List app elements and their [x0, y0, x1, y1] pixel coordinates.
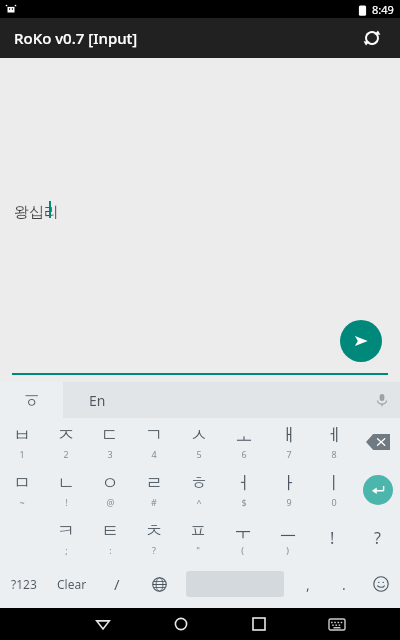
staticText: @: [106, 496, 115, 508]
staticText: 2: [63, 448, 69, 460]
staticText: (: [241, 544, 244, 556]
staticText: ㅏ: [280, 472, 298, 495]
button[interactable]: Recents: [220, 608, 298, 640]
staticText: 0: [331, 496, 337, 508]
button[interactable]: ㅅ: [176, 418, 221, 466]
button[interactable]: ㅂ: [0, 418, 44, 466]
button[interactable]: ,: [290, 562, 326, 606]
staticText: 3: [107, 448, 113, 460]
button[interactable]: ㅋ: [44, 514, 88, 562]
staticText: RoKo v0.7 [Input]: [14, 28, 138, 48]
button[interactable]: ㅜ: [220, 514, 265, 562]
staticText: ": [196, 544, 200, 556]
staticText: ㅓ: [235, 472, 253, 495]
button[interactable]: ㄷ: [88, 418, 132, 466]
button[interactable]: ㅗ: [221, 418, 266, 466]
staticText: ㅜ: [234, 520, 252, 543]
button[interactable]: Keyboard: [298, 608, 376, 640]
staticText: #: [151, 496, 157, 508]
button[interactable]: ㅌ: [88, 514, 132, 562]
staticText: 6: [241, 448, 247, 460]
staticText: ?123: [11, 576, 37, 592]
button[interactable]: ㅈ: [44, 418, 88, 466]
button[interactable]: ㅓ: [221, 466, 266, 514]
button[interactable]: Emoji: [362, 562, 400, 606]
staticText: ㅁ: [13, 472, 31, 495]
button[interactable]: Back: [64, 608, 142, 640]
staticText: 5: [196, 448, 202, 460]
button[interactable]: Language: [0, 382, 63, 418]
staticText: :: [109, 544, 112, 556]
staticText: ~: [19, 496, 25, 508]
staticText: Clear: [57, 576, 87, 592]
staticText: ㅈ: [57, 424, 75, 447]
button[interactable]: /: [96, 562, 138, 606]
button[interactable]: Home: [142, 608, 220, 640]
staticText: ㅔ: [325, 424, 343, 447]
button[interactable]: Backspace: [356, 418, 400, 466]
staticText: 9: [286, 496, 292, 508]
button[interactable]: Refresh: [352, 18, 392, 58]
staticText: !: [330, 527, 335, 549]
button[interactable]: ㅍ: [176, 514, 220, 562]
button[interactable]: Change keyboard: [138, 562, 180, 606]
staticText: /: [114, 574, 120, 594]
button[interactable]: En: [63, 382, 400, 418]
staticText: 4: [151, 448, 157, 460]
button[interactable]: ㅇ: [88, 466, 132, 514]
staticText: ㄷ: [101, 424, 119, 447]
staticText: ㅣ: [325, 472, 343, 495]
button[interactable]: ㅏ: [266, 466, 311, 514]
button[interactable]: ㅁ: [0, 466, 44, 514]
staticText: 1: [19, 448, 25, 460]
staticText: ㅡ: [279, 520, 297, 543]
staticText: ;: [65, 544, 68, 556]
button[interactable]: ㅡ: [265, 514, 310, 562]
staticText: ㄹ: [145, 472, 163, 495]
button[interactable]: .: [326, 562, 362, 606]
staticText: !: [65, 496, 68, 508]
staticText: ㅂ: [13, 424, 31, 447]
button[interactable]: !: [310, 514, 355, 562]
button[interactable]: Send: [340, 320, 382, 362]
staticText: 7: [286, 448, 292, 460]
button[interactable]: ㅐ: [266, 418, 311, 466]
staticText: 왕십리: [14, 203, 59, 222]
button[interactable]: ㅔ: [311, 418, 356, 466]
button[interactable]: Enter: [356, 466, 400, 514]
button[interactable]: ㅣ: [311, 466, 356, 514]
staticText: .: [342, 575, 346, 594]
button[interactable]: ㄱ: [132, 418, 176, 466]
staticText: ^: [196, 496, 202, 508]
button[interactable]: ?123: [0, 562, 48, 606]
button[interactable]: ㄹ: [132, 466, 176, 514]
button[interactable]: ?: [355, 514, 400, 562]
staticText: ㅋ: [57, 520, 75, 543]
staticText: ,: [306, 575, 310, 594]
button[interactable]: ㅎ: [176, 466, 221, 514]
staticText: ㄱ: [145, 424, 163, 447]
staticText: ㅐ: [280, 424, 298, 447]
button[interactable]: Voice input: [364, 382, 400, 418]
staticText: $: [241, 496, 247, 508]
staticText: ㅍ: [189, 520, 207, 543]
staticText: ㅎ: [190, 472, 208, 495]
staticText: ?: [374, 527, 381, 549]
staticText: En: [89, 391, 106, 410]
button[interactable]: ㅊ: [132, 514, 176, 562]
button[interactable]: Clear: [48, 562, 96, 606]
staticText: ㅅ: [190, 424, 208, 447]
staticText: ㄴ: [57, 472, 75, 495]
staticText: ㅊ: [145, 520, 163, 543]
staticText: ㅌ: [101, 520, 119, 543]
staticText: ㆆ: [23, 390, 40, 411]
staticText: 8:49: [372, 2, 394, 17]
button[interactable]: ㄴ: [44, 466, 88, 514]
staticText: ㅇ: [101, 472, 119, 495]
staticText: ㅗ: [235, 424, 253, 447]
staticText: ): [286, 544, 289, 556]
staticText: 8: [331, 448, 337, 460]
staticText: ?: [152, 544, 156, 556]
